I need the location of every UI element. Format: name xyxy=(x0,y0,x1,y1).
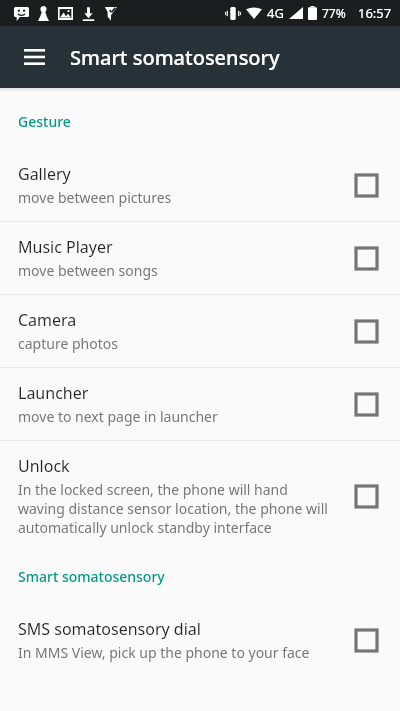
staticText: Unlock xyxy=(18,455,70,477)
staticText: move between pictures xyxy=(18,188,172,207)
staticText: 4G xyxy=(267,4,284,22)
staticText: 77% xyxy=(322,5,346,21)
button[interactable]: Unlock xyxy=(0,441,400,551)
button[interactable]: Toggle checkbox xyxy=(348,622,384,658)
staticText: 16:57 xyxy=(358,4,392,22)
staticText: move between songs xyxy=(18,261,158,280)
staticText: Gesture xyxy=(18,112,71,131)
button[interactable]: Launcher xyxy=(0,368,400,440)
staticText: Smart somatosensory xyxy=(18,567,165,586)
staticText: Launcher xyxy=(18,382,89,404)
staticText: Camera xyxy=(18,309,77,331)
staticText: Smart somatosensory xyxy=(70,44,280,71)
staticText: In MMS View, pick up the phone to your f… xyxy=(18,643,310,662)
button[interactable]: Toggle checkbox xyxy=(348,478,384,514)
button[interactable]: Music Player xyxy=(0,222,400,294)
button[interactable]: Toggle checkbox xyxy=(348,240,384,276)
button[interactable]: Toggle checkbox xyxy=(348,313,384,349)
staticText: move to next page in launcher xyxy=(18,407,218,426)
staticText: SMS somatosensory dial xyxy=(18,618,201,640)
button[interactable]: Gallery xyxy=(0,149,400,221)
button[interactable]: Camera xyxy=(0,295,400,367)
staticText: In the locked screen, the phone will han… xyxy=(18,480,336,537)
staticText: Gallery xyxy=(18,163,71,185)
staticText: Music Player xyxy=(18,236,113,258)
button[interactable]: Open navigation menu xyxy=(10,33,58,81)
button[interactable]: SMS somatosensory dial xyxy=(0,604,400,676)
button[interactable]: Toggle checkbox xyxy=(348,386,384,422)
staticText: capture photos xyxy=(18,334,118,353)
button[interactable]: Toggle checkbox xyxy=(348,167,384,203)
